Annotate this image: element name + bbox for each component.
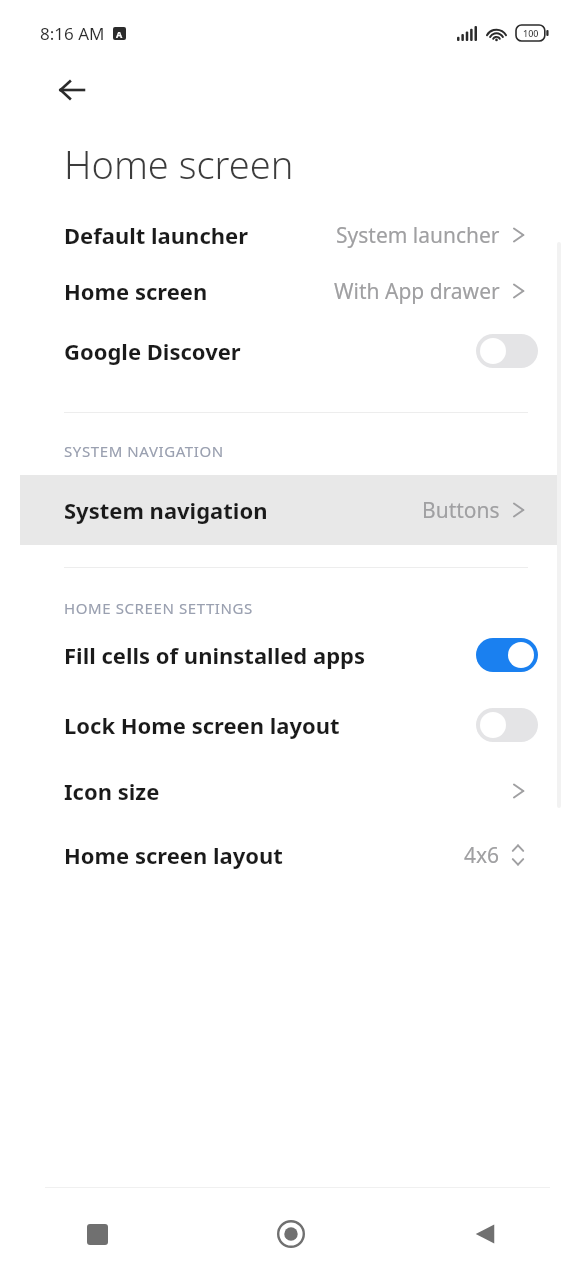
staticText: SYSTEM NAVIGATION	[64, 441, 224, 461]
staticText: Fill cells of uninstalled apps	[64, 640, 365, 670]
staticText: With App drawer	[334, 277, 500, 306]
staticText: A	[116, 28, 123, 40]
button[interactable]: Home screen layout	[0, 824, 582, 886]
button[interactable]: Home screen	[0, 262, 582, 320]
staticText: Home screen layout	[64, 840, 283, 870]
button[interactable]: Back	[48, 66, 96, 114]
button[interactable]: System navigation	[20, 475, 560, 545]
staticText: Google Discover	[64, 336, 241, 366]
staticText: System launcher	[336, 221, 500, 250]
staticText: HOME SCREEN SETTINGS	[64, 598, 253, 618]
staticText: 8:16 AM	[40, 22, 105, 45]
staticText: 4x6	[464, 841, 500, 870]
staticText: Home screen	[64, 138, 294, 190]
button[interactable]: Home	[194, 1188, 388, 1280]
staticText: Icon size	[64, 776, 160, 806]
button[interactable]: Back	[388, 1188, 582, 1280]
button[interactable]: Fill cells of uninstalled apps	[0, 618, 582, 692]
button[interactable]: Google Discover	[0, 320, 582, 382]
button[interactable]: Icon size	[0, 758, 582, 824]
button[interactable]: Recents	[0, 1188, 194, 1280]
staticText: Buttons	[422, 496, 500, 525]
staticText: Lock Home screen layout	[64, 710, 340, 740]
staticText: Home screen	[64, 276, 208, 306]
staticText: System navigation	[64, 495, 268, 525]
staticText: 100	[523, 27, 539, 39]
button[interactable]: Lock Home screen layout	[0, 692, 582, 758]
button[interactable]: Default launcher	[0, 208, 582, 262]
staticText: Default launcher	[64, 220, 249, 250]
